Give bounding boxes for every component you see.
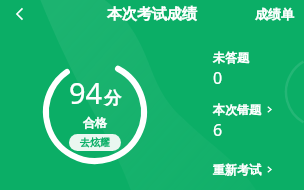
staticText: 合格 [83,115,107,130]
button[interactable]: 本次错题 [213,102,273,117]
staticText: 重新考试 [213,162,261,177]
staticText: 成绩单 [255,6,294,22]
staticText: 未答题 [213,50,249,65]
staticText: 本次考试成绩 [107,5,197,24]
button[interactable]: 成绩单 [245,2,304,26]
button[interactable]: 重新考试 [213,162,273,177]
staticText: 0 [213,67,223,89]
button[interactable]: 去炫耀 [69,134,121,151]
staticText: 6 [213,119,223,141]
button[interactable]: Back [8,2,32,26]
staticText: 分 [104,88,121,109]
staticText: 本次错题 [213,102,261,117]
staticText: 去炫耀 [80,136,110,149]
staticText: 94 [69,73,103,112]
